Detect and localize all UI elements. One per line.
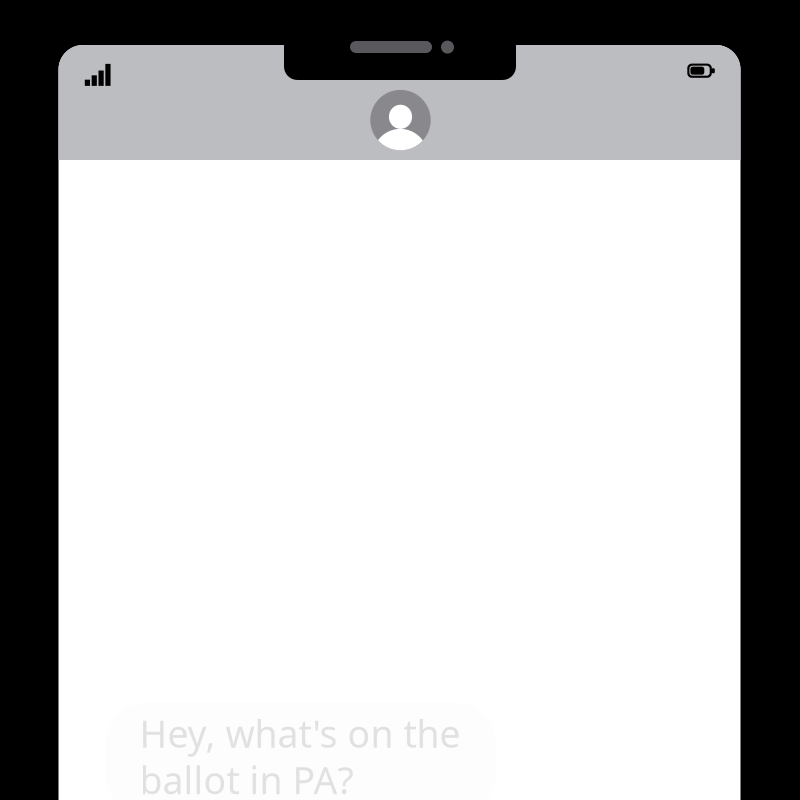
- button[interactable]: Profile: [370, 90, 431, 150]
- button[interactable]: Hey, what's on the ballot in PA?: [105, 702, 495, 800]
- staticText: Hey, what's on the ballot in PA?: [139, 708, 460, 800]
